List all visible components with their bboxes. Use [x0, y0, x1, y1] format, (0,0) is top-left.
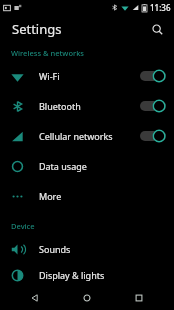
staticText: Cellular networks	[39, 130, 140, 142]
button[interactable]: Search	[146, 18, 168, 40]
staticText: Settings	[12, 20, 62, 38]
staticText: Wi-Fi	[39, 70, 140, 82]
staticText: 11:36	[150, 2, 171, 13]
staticText: Device	[11, 221, 35, 231]
button[interactable]: Data usage	[0, 151, 174, 181]
button[interactable]: Wi-Fi	[0, 61, 174, 91]
staticText: Sounds	[39, 243, 166, 255]
button[interactable]: More	[0, 181, 174, 211]
button[interactable]: Sounds	[0, 234, 174, 264]
button[interactable]: Recent apps	[122, 286, 156, 310]
button[interactable]: Home	[70, 286, 104, 310]
staticText: Wireless & networks	[11, 48, 84, 58]
staticText: Display & lights	[39, 269, 166, 281]
staticText: Data usage	[39, 160, 166, 172]
button[interactable]: Toggle	[140, 68, 166, 84]
staticText: More	[39, 190, 166, 202]
button[interactable]: Cellular networks	[0, 121, 174, 151]
staticText: Bluetooth	[39, 100, 140, 112]
button[interactable]: Bluetooth	[0, 91, 174, 121]
button[interactable]: Back	[18, 286, 52, 310]
button[interactable]: Toggle	[140, 128, 166, 144]
button[interactable]: Display & lights	[0, 264, 174, 286]
button[interactable]: Toggle	[140, 98, 166, 114]
